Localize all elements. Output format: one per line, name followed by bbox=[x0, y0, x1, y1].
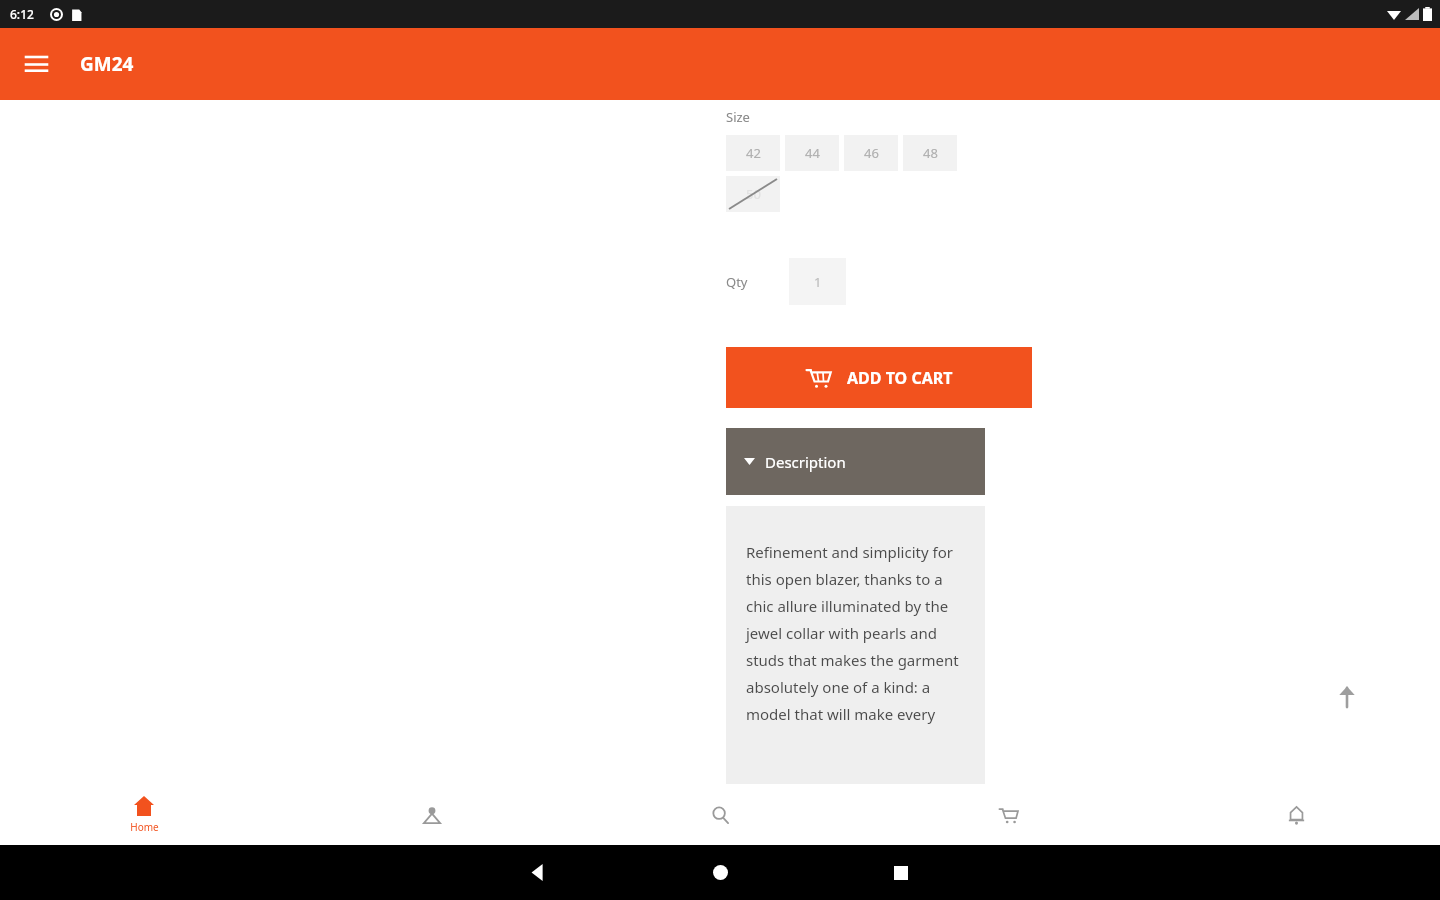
staticText: 50 bbox=[746, 185, 761, 203]
button[interactable]: 1 bbox=[789, 258, 846, 305]
button[interactable]: 50 bbox=[726, 176, 780, 212]
staticText: 44 bbox=[805, 144, 820, 162]
staticText: 42 bbox=[746, 144, 761, 162]
button[interactable]: 48 bbox=[903, 135, 957, 171]
staticText: 48 bbox=[923, 144, 938, 162]
button[interactable]: 42 bbox=[726, 135, 780, 171]
button[interactable]: 46 bbox=[844, 135, 898, 171]
staticText: 6:12 bbox=[10, 6, 34, 22]
staticText: Refinement and simplicity for this open … bbox=[746, 542, 971, 725]
staticText: GM24 bbox=[80, 51, 134, 77]
other: Recent apps bbox=[877, 845, 925, 900]
staticText: 1 bbox=[814, 273, 822, 291]
staticText: Description bbox=[765, 452, 846, 472]
button[interactable]: Account bbox=[288, 785, 576, 845]
staticText: Size bbox=[726, 108, 750, 126]
button[interactable]: Cart bbox=[864, 785, 1152, 845]
button[interactable]: Notifications bbox=[1152, 785, 1440, 845]
button[interactable]: Description bbox=[726, 428, 985, 495]
button[interactable]: Home bbox=[0, 785, 288, 845]
button[interactable]: 44 bbox=[785, 135, 839, 171]
staticText: Qty bbox=[726, 273, 748, 291]
staticText: ADD TO CART bbox=[847, 367, 953, 389]
button[interactable]: Scroll to top bbox=[1311, 661, 1383, 733]
button[interactable]: ADD TO CART bbox=[726, 347, 1032, 408]
button[interactable]: Menu bbox=[14, 42, 58, 86]
staticText: Home bbox=[130, 820, 159, 834]
other: Home bbox=[696, 845, 744, 900]
button[interactable]: Search bbox=[576, 785, 864, 845]
other: Back bbox=[513, 845, 561, 900]
staticText: 46 bbox=[864, 144, 879, 162]
